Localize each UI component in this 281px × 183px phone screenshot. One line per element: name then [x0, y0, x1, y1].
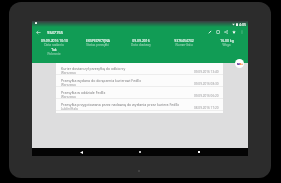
button[interactable]: Przesyłka wydana do doręczenia kurierowi…: [56, 75, 223, 87]
staticText: Waga: [222, 43, 231, 47]
button[interactable]: Edit: [206, 27, 214, 37]
staticText: 9376454732: [174, 38, 194, 43]
staticText: Warszawa: [61, 71, 76, 75]
staticText: EKSPEDYCYJNA: [86, 38, 110, 43]
button[interactable]: More options: [238, 27, 246, 37]
staticText: Warszawa: [61, 83, 76, 87]
button[interactable]: Navigate up: [32, 27, 45, 37]
button[interactable]: 9376454732: [162, 38, 205, 47]
staticText: Kurier dostarczył przesyłkę do odbiorcy: [61, 66, 126, 71]
staticText: Warszawa: [61, 95, 76, 99]
button[interactable]: Copy: [214, 27, 222, 37]
button[interactable]: Przesyłka przygotowana przez nadawcę do …: [56, 99, 223, 111]
staticText: Lublin/Hala: [61, 107, 78, 111]
staticText: Tak: [51, 47, 57, 52]
staticText: 09.09.2016 13:40: [194, 70, 219, 74]
button[interactable]: 16.00 kg: [205, 38, 248, 47]
staticText: 09.09.2016 10:10: [41, 38, 68, 43]
staticText: 16.00 kg: [220, 38, 234, 43]
staticText: Numer listu: [175, 43, 193, 47]
staticText: Przesyłka przygotowana przez nadawcę do …: [61, 102, 180, 107]
button[interactable]: Przesyłka w oddziale FedEx: [56, 87, 223, 99]
button[interactable]: Favourite: [230, 27, 238, 37]
button[interactable]: Share: [222, 27, 230, 37]
button[interactable]: FedEx: [235, 59, 244, 68]
staticText: Przesyłka wydana do doręczenia kurierowi…: [61, 78, 142, 83]
staticText: Status przesyłki: [86, 43, 109, 47]
button[interactable]: Recent apps: [189, 148, 209, 156]
staticText: Pobranie: [47, 52, 61, 56]
staticText: Data dostawy: [131, 43, 151, 47]
staticText: 08.09.2016 17:20: [194, 106, 219, 110]
staticText: Przesyłka w oddziale FedEx: [61, 90, 106, 95]
button[interactable]: 09.09.2016: [119, 38, 162, 47]
button[interactable]: Home: [130, 148, 150, 156]
staticText: 09.09.2016: [132, 38, 150, 43]
staticText: 09.09.2016 08:30: [194, 82, 219, 86]
button[interactable]: 09.09.2016 10:10: [32, 38, 76, 56]
staticText: Data nadania: [44, 43, 64, 47]
button[interactable]: Kurier dostarczył przesyłkę do odbiorcy: [56, 63, 223, 75]
staticText: 9347765: [47, 30, 64, 35]
button[interactable]: Back: [71, 148, 91, 156]
button[interactable]: EKSPEDYCYJNA: [76, 38, 119, 47]
staticText: 09.09.2016 06:20: [194, 94, 219, 98]
staticText: 4:05: [239, 22, 247, 27]
